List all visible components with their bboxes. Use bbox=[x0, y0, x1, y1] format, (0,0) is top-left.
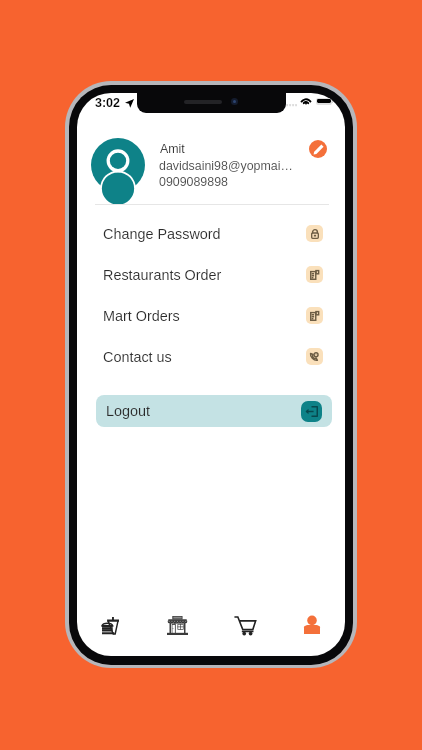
staticText: 0909089898 bbox=[159, 175, 228, 189]
button[interactable]: Profile bbox=[278, 602, 345, 648]
button[interactable]: Mart Orders bbox=[77, 295, 345, 336]
button[interactable]: Food bbox=[77, 602, 144, 648]
button[interactable]: Store bbox=[144, 602, 211, 648]
button[interactable]: Edit profile bbox=[309, 140, 327, 158]
staticText: Restaurants Order bbox=[103, 267, 222, 283]
staticText: davidsaini98@yopmai… bbox=[159, 159, 293, 173]
staticText: Change Password bbox=[103, 226, 221, 242]
staticText: Mart Orders bbox=[103, 308, 180, 324]
button[interactable]: Contact us bbox=[77, 336, 345, 377]
button[interactable]: Change Password bbox=[77, 213, 345, 254]
button[interactable]: Logout bbox=[96, 395, 332, 427]
button[interactable]: Cart bbox=[211, 602, 278, 648]
staticText: Amit bbox=[160, 142, 185, 156]
staticText: Contact us bbox=[103, 349, 172, 365]
staticText: Logout bbox=[106, 403, 151, 419]
staticText: 3:02 bbox=[95, 96, 121, 110]
button[interactable]: Restaurants Order bbox=[77, 254, 345, 295]
